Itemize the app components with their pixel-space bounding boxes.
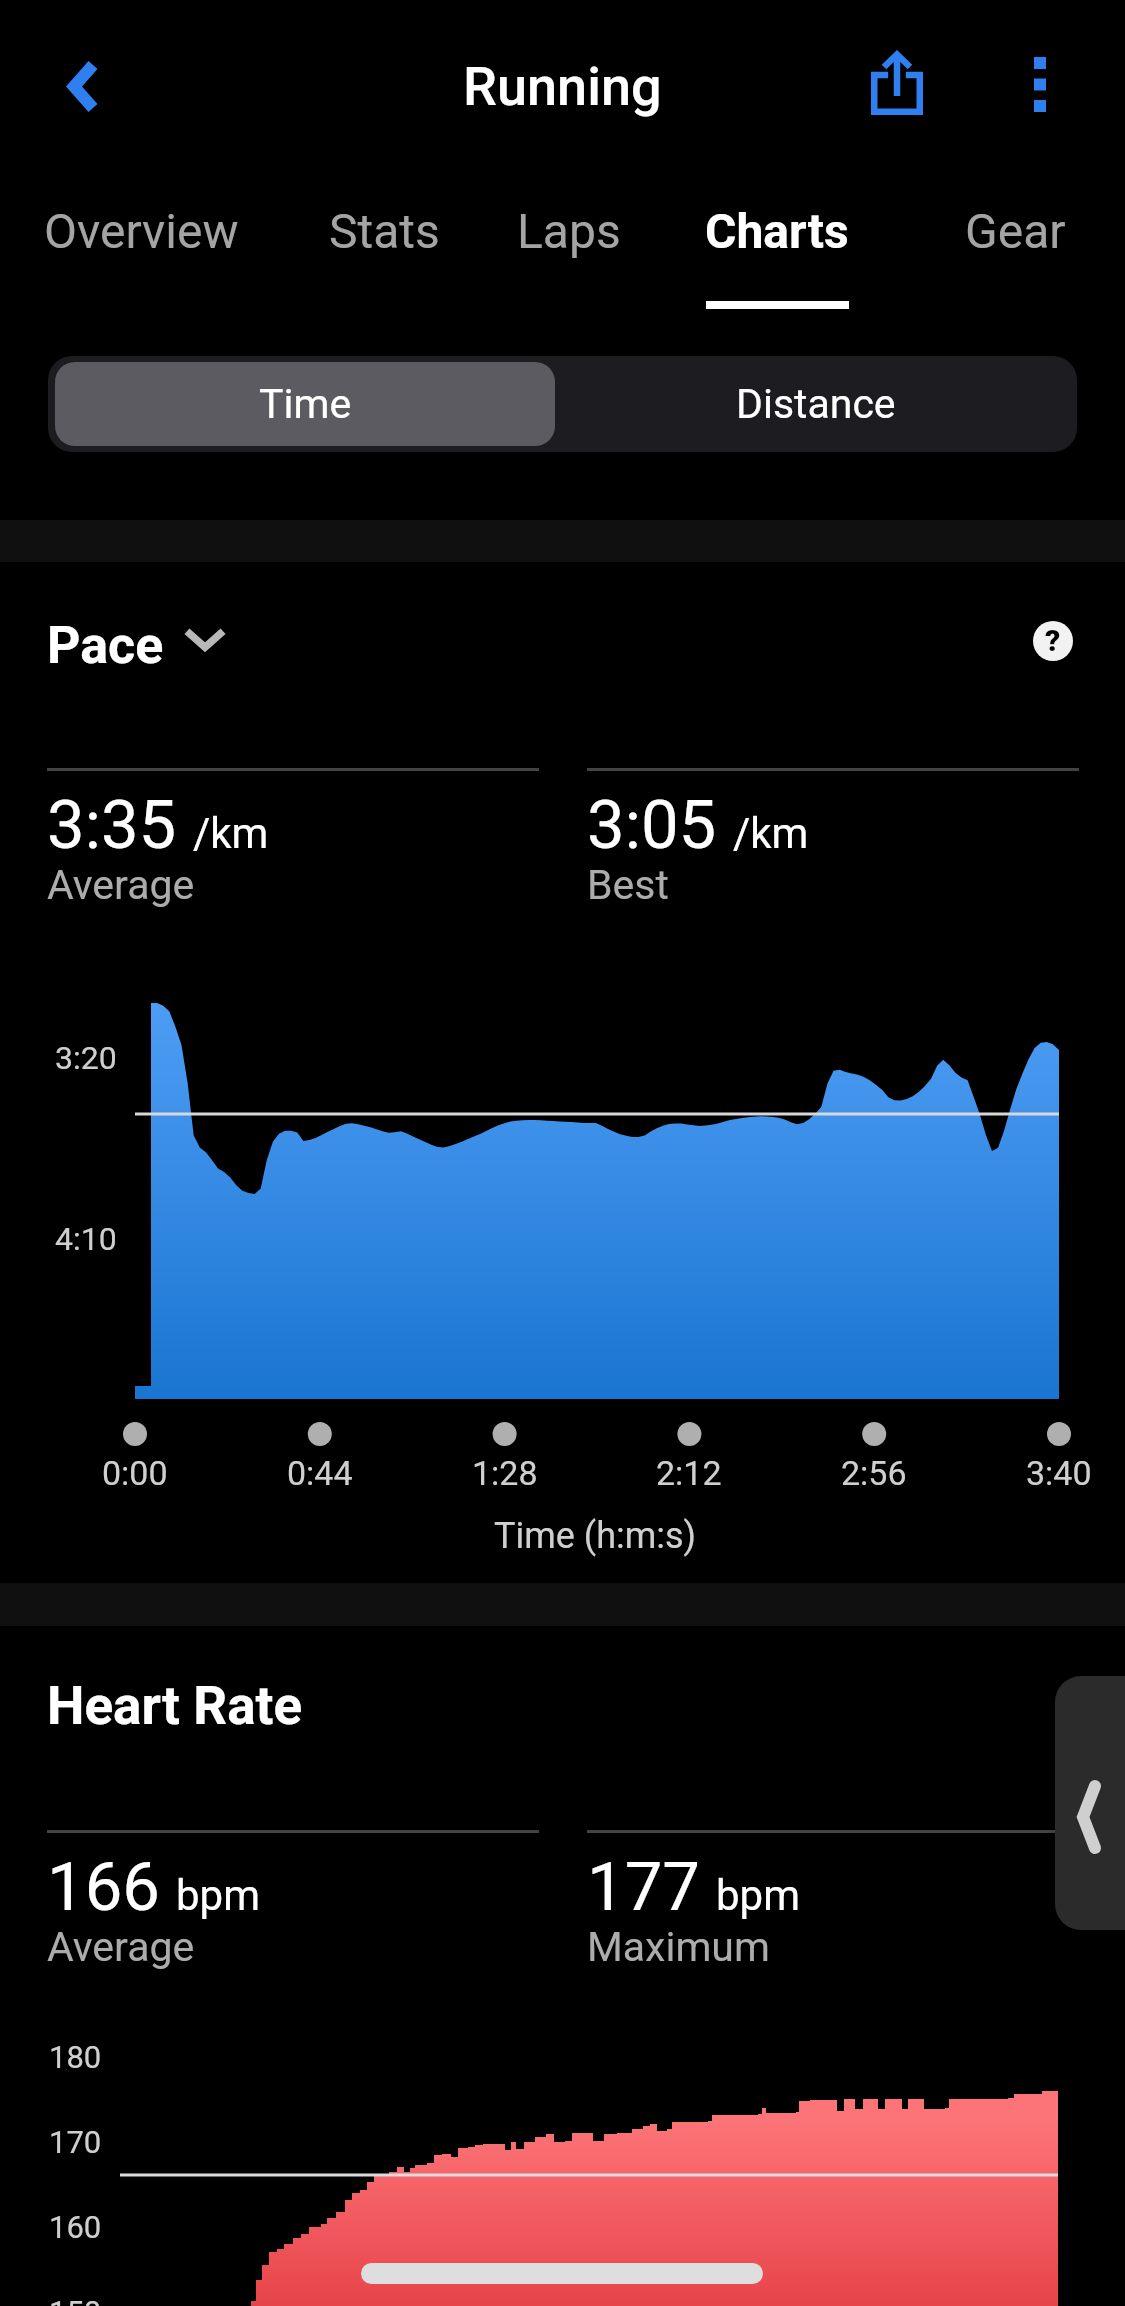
staticText: bpm xyxy=(176,1871,260,1920)
staticText: 170 xyxy=(49,2124,102,2160)
staticText: 2:56 xyxy=(841,1453,907,1493)
staticText: 3:40 xyxy=(1026,1453,1092,1493)
staticText: 4:10 xyxy=(55,1220,117,1258)
button[interactable]: Stats xyxy=(313,175,455,310)
button[interactable]: More options xyxy=(988,32,1092,136)
button[interactable]: Distance xyxy=(562,356,1070,452)
button[interactable]: Help xyxy=(1033,621,1073,661)
staticText: Gear xyxy=(965,203,1066,259)
staticText: Charts xyxy=(705,203,849,259)
button[interactable]: Laps xyxy=(495,175,642,310)
button[interactable]: Time xyxy=(55,362,555,446)
staticText: 1:28 xyxy=(472,1453,538,1493)
button[interactable]: Share xyxy=(845,32,949,136)
staticText: 166 xyxy=(47,1848,160,1927)
staticText: Average xyxy=(47,1923,195,1971)
staticText: /km xyxy=(733,809,809,858)
staticText: Best xyxy=(587,861,669,909)
staticText: Laps xyxy=(517,203,621,259)
staticText: Maximum xyxy=(587,1923,770,1971)
staticText: Overview xyxy=(44,203,239,259)
staticText: 0:44 xyxy=(287,1453,353,1493)
button[interactable]: Gear xyxy=(947,175,1084,310)
staticText: 150 xyxy=(49,2294,102,2306)
staticText: 177 xyxy=(587,1848,700,1927)
button[interactable]: Charts xyxy=(684,175,870,310)
staticText: 180 xyxy=(49,2039,102,2075)
staticText: ? xyxy=(1045,623,1061,658)
staticText: Time (h:m:s) xyxy=(494,1515,697,1557)
staticText: Time xyxy=(259,380,352,428)
button[interactable]: Overview xyxy=(25,175,257,310)
staticText: 3:05 xyxy=(587,786,717,865)
staticText: 2:12 xyxy=(656,1453,722,1493)
staticText: Distance xyxy=(736,380,896,428)
staticText: /km xyxy=(193,809,269,858)
staticText: bpm xyxy=(716,1871,800,1920)
staticText: Stats xyxy=(329,203,440,259)
staticText: 0:00 xyxy=(102,1453,168,1493)
button[interactable]: Pace xyxy=(47,615,267,665)
button[interactable]: Back xyxy=(28,34,132,138)
staticText: Heart Rate xyxy=(47,1675,303,1737)
staticText: Running xyxy=(463,55,662,118)
staticText: 160 xyxy=(49,2209,102,2245)
staticText: 3:35 xyxy=(47,786,177,865)
staticText: 3:20 xyxy=(55,1039,117,1077)
button[interactable]: Open side panel xyxy=(1055,1676,1125,1930)
staticText: Average xyxy=(47,861,195,909)
staticText: Pace xyxy=(47,615,164,665)
